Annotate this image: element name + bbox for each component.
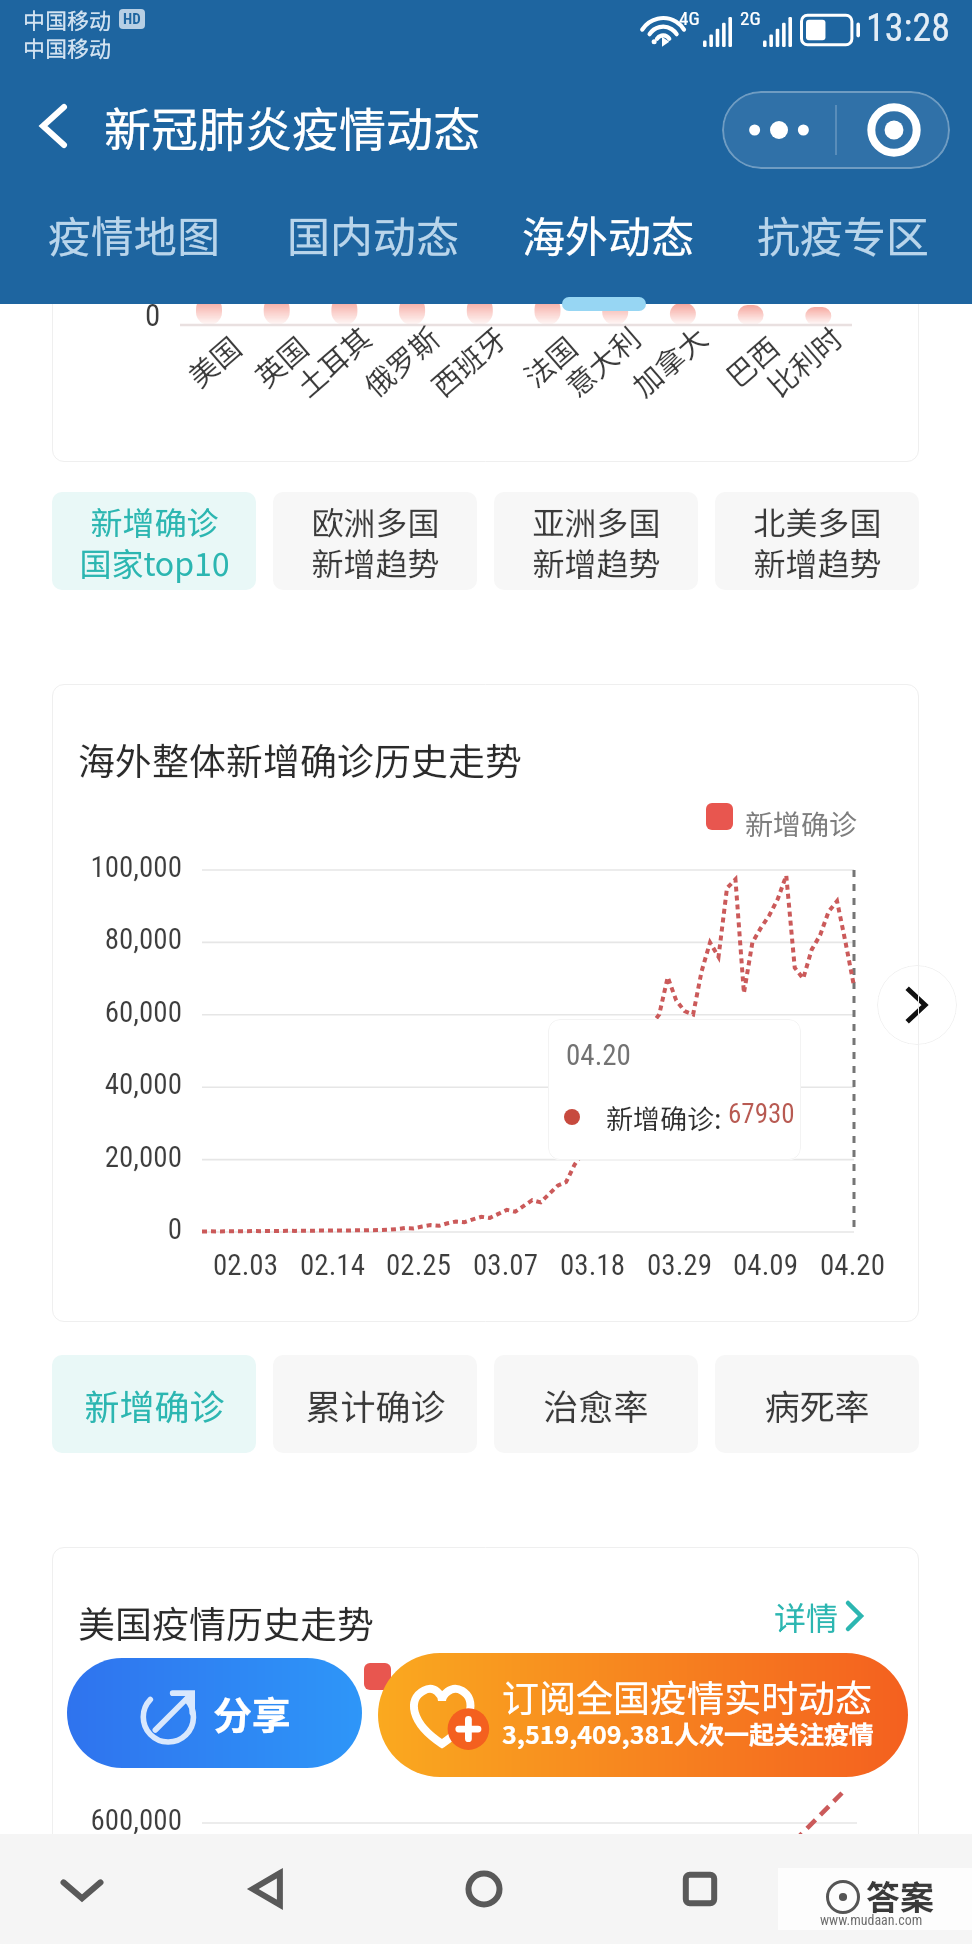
staticText: 新增确诊 国家top10 [79,498,230,585]
staticText: 比利时 [757,315,851,405]
staticText: 0 [145,297,161,333]
staticText: 北美多国 新增趋势 [753,498,882,585]
staticText: 04.09 [733,1248,798,1282]
staticText: 美国 [177,325,250,395]
staticText: 中国移动 [23,3,112,35]
staticText: 治愈率 [543,1379,649,1430]
button[interactable]: 抗疫专区 [741,189,941,279]
staticText: 亚洲多国 新增趋势 [532,498,661,585]
button[interactable]: 治愈率 [494,1355,698,1453]
staticText: 80,000 [104,922,182,956]
staticText: 100,000 [90,850,182,884]
staticText: 2G [740,7,761,29]
staticText: HD [123,10,141,28]
staticText: 02.14 [300,1248,365,1282]
button[interactable]: 亚洲多国 新增趋势 [494,492,698,590]
button[interactable]: 详情 [774,1593,863,1639]
staticText: 04.20 [566,1038,631,1072]
other: 返回 [20,93,86,159]
staticText: 疫情地图 [48,203,220,265]
staticText: 分享 [213,1685,292,1737]
staticText: 新增确诊: [606,1098,728,1137]
staticText: 600,000 [90,1803,182,1837]
button[interactable]: 国内动态 [271,189,471,279]
staticText: 03.18 [560,1248,625,1282]
staticText: 60,000 [104,995,182,1029]
staticText: 累计确诊 [305,1379,446,1430]
button[interactable]: 更多 [722,91,835,169]
staticText: 详情 [774,1593,839,1639]
staticText: 0 [167,1212,182,1246]
staticText: 海外整体新增确诊历史走势 [78,732,522,786]
staticText: 40,000 [104,1067,182,1101]
staticText: 20,000 [104,1140,182,1174]
button[interactable]: 疫情地图 [32,189,232,279]
staticText: 英国 [244,325,317,395]
staticText: 巴西 [715,325,788,395]
staticText: 02.25 [386,1248,451,1282]
button[interactable]: 订阅全国疫情实时动态 [378,1653,908,1777]
staticText: 西班牙 [421,315,515,405]
button[interactable]: 下一个 [877,965,957,1045]
staticText: 订阅全国疫情实时动态 [502,1669,872,1715]
staticText: 海外动态 [522,203,694,265]
staticText: 加拿大 [622,315,716,405]
staticText: 新冠肺炎疫情动态 [104,92,480,160]
staticText: 国内动态 [287,203,459,265]
staticText: 02.03 [213,1248,278,1282]
button[interactable]: 返回 [20,92,480,160]
button[interactable]: 分享 [67,1658,362,1768]
button[interactable]: 欧洲多国 新增趋势 [273,492,477,590]
button[interactable]: 北美多国 新增趋势 [715,492,919,590]
button[interactable]: 累计确诊 [273,1355,477,1453]
button[interactable]: 海外动态 [506,189,706,279]
staticText: 4G [679,7,700,29]
staticText: 病死率 [764,1379,870,1430]
staticText: 答案 [866,1871,934,1920]
button[interactable]: 返回 [213,1839,323,1939]
button[interactable]: 新增确诊 [52,1355,256,1453]
staticText: 04.20 [820,1248,885,1282]
staticText: 67930 [728,1098,795,1130]
staticText: 3,519,409,381人次一起关注疫情 [502,1715,874,1749]
staticText: 03.07 [473,1248,538,1282]
staticText: 中国移动 [23,31,112,63]
staticText: 土耳其 [286,315,380,405]
staticText: 欧洲多国 新增趋势 [311,498,440,585]
staticText: 意大利 [555,315,649,405]
button[interactable]: 最近任务 [645,1839,755,1939]
staticText: www.mudaan.com [820,1912,923,1928]
staticText: 法国 [513,325,586,395]
staticText: 抗疫专区 [757,203,929,265]
staticText: 13:28 [866,6,950,51]
button[interactable]: 新增确诊 国家top10 [52,492,256,590]
button[interactable]: 关闭小程序 [837,91,950,169]
staticText: 美国疫情历史走势 [78,1595,374,1649]
staticText: 俄罗斯 [354,315,448,405]
button[interactable]: 收起键盘 [27,1839,137,1939]
staticText: 新增确诊 [745,803,858,844]
button[interactable]: 病死率 [715,1355,919,1453]
staticText: 03.29 [647,1248,712,1282]
button[interactable]: 主页 [429,1839,539,1939]
staticText: 新增确诊 [84,1379,225,1430]
